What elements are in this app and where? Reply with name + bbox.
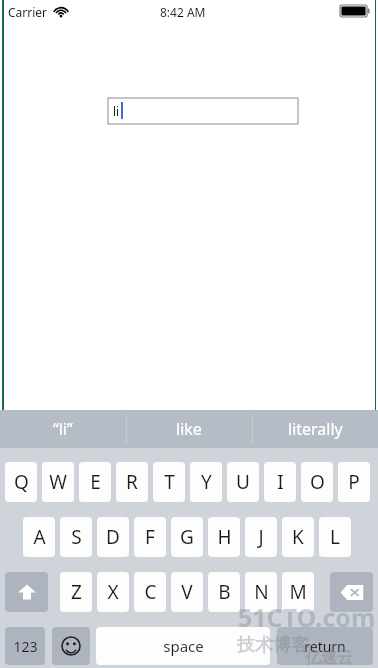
staticText: N [254, 579, 269, 605]
staticText: V [181, 579, 193, 605]
button[interactable]: O [301, 462, 333, 502]
button[interactable]: Y [190, 462, 222, 502]
staticText: X [107, 579, 119, 605]
staticText: 8:42 AM [160, 4, 206, 20]
button[interactable]: Backspace [330, 572, 373, 612]
button[interactable]: G [171, 517, 203, 557]
button[interactable]: “li” [0, 410, 126, 448]
button[interactable]: Z [60, 572, 92, 612]
button[interactable]: literally [252, 410, 378, 448]
button[interactable]: U [227, 462, 259, 502]
button[interactable]: V [171, 572, 203, 612]
button[interactable]: B [208, 572, 240, 612]
staticText: like [176, 418, 202, 440]
staticText: G [180, 524, 194, 550]
staticText: L [330, 524, 340, 550]
staticText: return [304, 637, 346, 656]
button[interactable]: P [338, 462, 370, 502]
staticText: K [292, 524, 304, 550]
button[interactable]: return [277, 627, 373, 665]
staticText: O [310, 469, 325, 495]
staticText: U [236, 469, 250, 495]
staticText: 亿速云 [305, 648, 353, 668]
staticText: T [164, 469, 175, 495]
button[interactable]: X [97, 572, 129, 612]
button[interactable]: I [264, 462, 296, 502]
staticText: M [289, 579, 307, 605]
staticText: H [217, 524, 232, 550]
button[interactable]: 123 [5, 627, 45, 665]
button[interactable]: Q [5, 462, 37, 502]
staticText: Carrier [8, 4, 48, 20]
button[interactable]: Shift [5, 572, 48, 612]
button[interactable]: C [134, 572, 166, 612]
button[interactable]: W [42, 462, 74, 502]
staticText: E [90, 469, 101, 495]
button[interactable]: space [96, 627, 270, 665]
staticText: D [106, 524, 120, 550]
staticText: B [218, 579, 231, 605]
button[interactable]: D [97, 517, 129, 557]
staticText: 51CTO.com [238, 600, 376, 634]
button[interactable]: E [79, 462, 111, 502]
staticText: Y [201, 469, 212, 495]
staticText: C [144, 579, 157, 605]
staticText: 技术博客 [237, 634, 309, 657]
button[interactable]: Emoji [52, 627, 90, 665]
staticText: literally [288, 418, 343, 440]
staticText: A [33, 524, 46, 550]
button[interactable]: A [23, 517, 55, 557]
button[interactable]: like [126, 410, 252, 448]
staticText: P [348, 469, 360, 495]
staticText: J [258, 524, 264, 550]
staticText: I [277, 469, 284, 495]
button[interactable]: S [60, 517, 92, 557]
staticText: W [49, 469, 67, 495]
staticText: Q [14, 469, 29, 495]
button[interactable]: F [134, 517, 166, 557]
button[interactable]: R [116, 462, 148, 502]
button[interactable]: H [208, 517, 240, 557]
staticText: R [126, 469, 138, 495]
button[interactable]: L [319, 517, 351, 557]
staticText: “li” [53, 418, 73, 440]
button[interactable]: M [282, 572, 314, 612]
button[interactable]: N [245, 572, 277, 612]
staticText: F [145, 524, 155, 550]
staticText: 123 [13, 637, 38, 656]
button[interactable]: K [282, 517, 314, 557]
staticText: li [113, 103, 120, 119]
staticText: Z [71, 579, 82, 605]
button[interactable]: T [153, 462, 185, 502]
button[interactable]: J [245, 517, 277, 557]
staticText: S [71, 524, 82, 550]
button[interactable]: li [108, 98, 298, 124]
staticText: space [163, 636, 204, 656]
